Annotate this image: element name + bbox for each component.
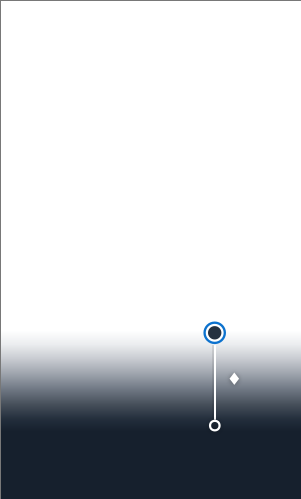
button[interactable]: Current location (198, 316, 232, 350)
button[interactable]: Destination (200, 411, 230, 441)
